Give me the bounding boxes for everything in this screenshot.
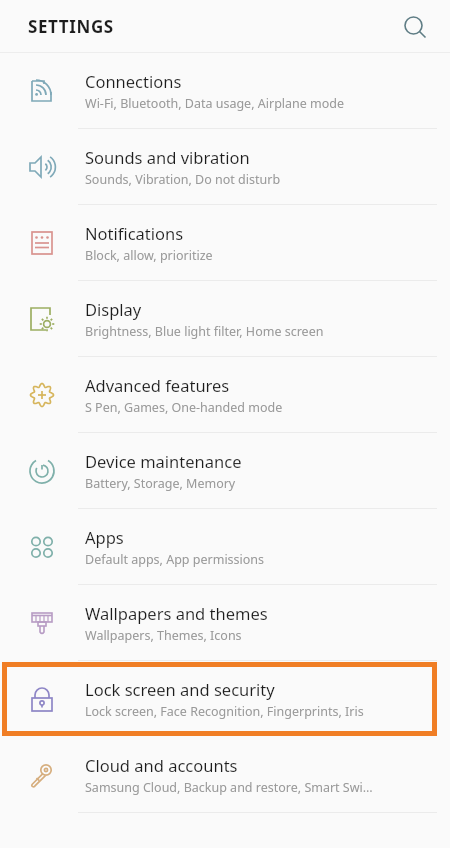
staticText: Brightness, Blue light filter, Home scre… bbox=[85, 323, 324, 340]
button[interactable]: Cloud and accounts bbox=[0, 737, 450, 813]
staticText: Sounds and vibration bbox=[85, 146, 250, 168]
staticText: Apps bbox=[85, 526, 124, 548]
button[interactable]: Connections bbox=[0, 53, 450, 129]
button[interactable]: Sounds and vibration bbox=[0, 129, 450, 205]
staticText: Lock screen, Face Recognition, Fingerpri… bbox=[85, 703, 364, 720]
staticText: Default apps, App permissions bbox=[85, 551, 265, 568]
button[interactable]: Wallpapers and themes bbox=[0, 585, 450, 661]
button[interactable]: Apps bbox=[0, 509, 450, 585]
staticText: Battery, Storage, Memory bbox=[85, 475, 236, 492]
staticText: Lock screen and security bbox=[85, 678, 275, 700]
button[interactable]: Notifications bbox=[0, 205, 450, 281]
staticText: Advanced features bbox=[85, 374, 230, 396]
staticText: SETTINGS bbox=[28, 15, 114, 38]
staticText: Block, allow, prioritize bbox=[85, 247, 213, 264]
staticText: Notifications bbox=[85, 222, 184, 244]
button[interactable]: Lock screen and security bbox=[2, 662, 437, 736]
staticText: Display bbox=[85, 298, 142, 320]
button[interactable]: Device maintenance bbox=[0, 433, 450, 509]
staticText: S Pen, Games, One-handed mode bbox=[85, 399, 283, 416]
button[interactable]: Advanced features bbox=[0, 357, 450, 433]
staticText: Wallpapers, Themes, Icons bbox=[85, 627, 242, 644]
staticText: Wi-Fi, Bluetooth, Data usage, Airplane m… bbox=[85, 95, 345, 112]
staticText: Connections bbox=[85, 70, 182, 92]
staticText: Cloud and accounts bbox=[85, 754, 238, 776]
staticText: Device maintenance bbox=[85, 450, 242, 472]
button[interactable]: Search bbox=[394, 5, 438, 49]
staticText: Wallpapers and themes bbox=[85, 602, 268, 624]
button[interactable]: Display bbox=[0, 281, 450, 357]
staticText: Sounds, Vibration, Do not disturb bbox=[85, 171, 281, 188]
staticText: Samsung Cloud, Backup and restore, Smart… bbox=[85, 779, 373, 796]
